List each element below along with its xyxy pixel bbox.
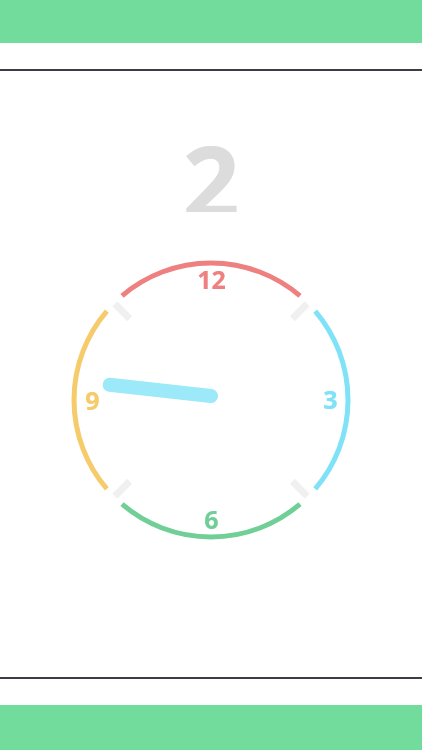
button[interactable]: Clock face showing time [48,237,374,563]
button[interactable]: 2 [0,112,422,212]
staticText: 2 [182,112,240,212]
staticText: 3 [323,382,338,416]
staticText: 12 [197,262,226,296]
staticText: 9 [85,383,100,417]
staticText: 6 [204,502,219,536]
